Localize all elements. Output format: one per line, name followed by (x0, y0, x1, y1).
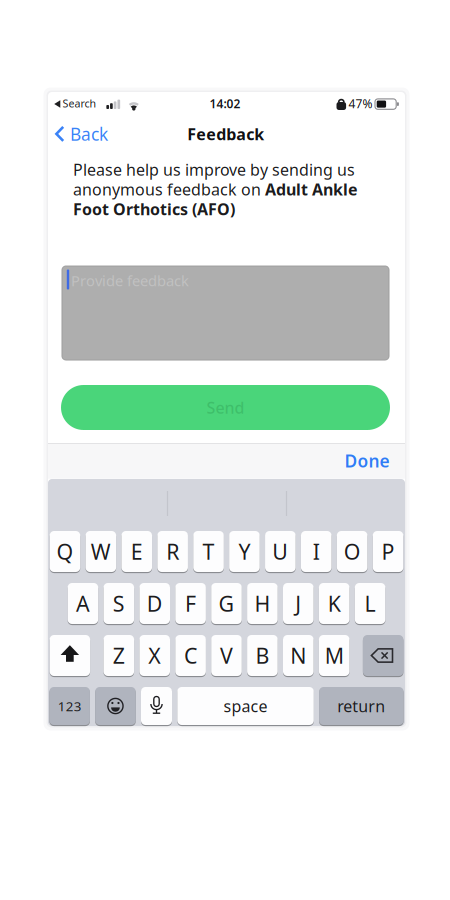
staticText: Y (238, 537, 250, 566)
button[interactable]: J (283, 583, 314, 624)
staticText: Provide feedback (71, 271, 189, 290)
staticText: 123 (58, 697, 82, 715)
button[interactable] (50, 635, 90, 676)
button[interactable]: R (157, 531, 188, 572)
staticText: R (166, 537, 179, 566)
staticText: Done (344, 449, 389, 472)
staticText: space (224, 695, 268, 717)
button[interactable]: Z (103, 635, 134, 676)
button[interactable]: Back (55, 121, 113, 147)
button[interactable]: U (265, 531, 296, 572)
button[interactable]: S (103, 583, 134, 624)
button[interactable]: Done (337, 446, 397, 476)
button[interactable]: O (337, 531, 367, 572)
staticText: Search (62, 96, 96, 110)
staticText: Send (206, 397, 244, 418)
button[interactable]: Send (61, 385, 390, 430)
button[interactable]: A (68, 583, 98, 624)
staticText: M (325, 641, 344, 670)
staticText: B (255, 641, 269, 670)
button[interactable]: K (319, 583, 349, 624)
staticText: 14:02 (209, 95, 240, 111)
button[interactable]: 123 (49, 687, 90, 725)
staticText: T (203, 537, 215, 566)
staticText: J (295, 589, 301, 618)
button[interactable]: Y (229, 531, 260, 572)
staticText: P (382, 537, 395, 566)
button[interactable] (363, 635, 403, 676)
staticText: F (185, 589, 196, 618)
button[interactable] (141, 687, 172, 725)
button[interactable]: W (86, 531, 116, 572)
button[interactable]: C (175, 635, 206, 676)
button[interactable] (62, 266, 389, 360)
button[interactable]: return (319, 687, 404, 725)
staticText: V (220, 641, 233, 670)
staticText: A (76, 589, 90, 618)
staticText: Foot Orthotics (AFO) (73, 198, 235, 220)
staticText: C (184, 641, 197, 670)
button[interactable]: space (177, 687, 314, 725)
staticText: U (272, 537, 288, 566)
staticText: return (337, 695, 385, 717)
button[interactable]: X (139, 635, 170, 676)
button[interactable]: I (301, 531, 332, 572)
staticText: Back (70, 122, 108, 145)
staticText: Adult Ankle (265, 179, 358, 200)
button[interactable]: G (211, 583, 242, 624)
staticText: O (344, 537, 361, 566)
staticText: G (218, 589, 234, 618)
staticText: H (254, 589, 270, 618)
button[interactable]: B (247, 635, 278, 676)
staticText: X (148, 641, 161, 670)
button[interactable]: M (319, 635, 349, 676)
staticText: Q (56, 537, 73, 566)
staticText: K (328, 589, 341, 618)
button[interactable]: L (355, 583, 385, 624)
staticText: 47% (348, 95, 372, 111)
staticText: E (131, 537, 143, 566)
staticText: N (290, 641, 306, 670)
staticText: S (113, 589, 125, 618)
button[interactable]: Q (50, 531, 80, 572)
staticText: Feedback (187, 123, 264, 145)
button[interactable] (95, 687, 136, 725)
button[interactable]: E (121, 531, 152, 572)
button[interactable]: T (193, 531, 224, 572)
button[interactable]: F (175, 583, 206, 624)
button[interactable]: P (373, 531, 403, 572)
staticText: D (147, 589, 163, 618)
staticText: I (313, 537, 320, 566)
staticText: L (365, 589, 376, 618)
staticText: Z (113, 641, 125, 670)
staticText: W (91, 537, 111, 566)
staticText: Please help us improve by sending us (73, 159, 355, 180)
button[interactable]: H (247, 583, 278, 624)
staticText: anonymous feedback on (73, 179, 265, 200)
button[interactable]: V (211, 635, 242, 676)
button[interactable]: N (283, 635, 314, 676)
button[interactable]: D (139, 583, 170, 624)
